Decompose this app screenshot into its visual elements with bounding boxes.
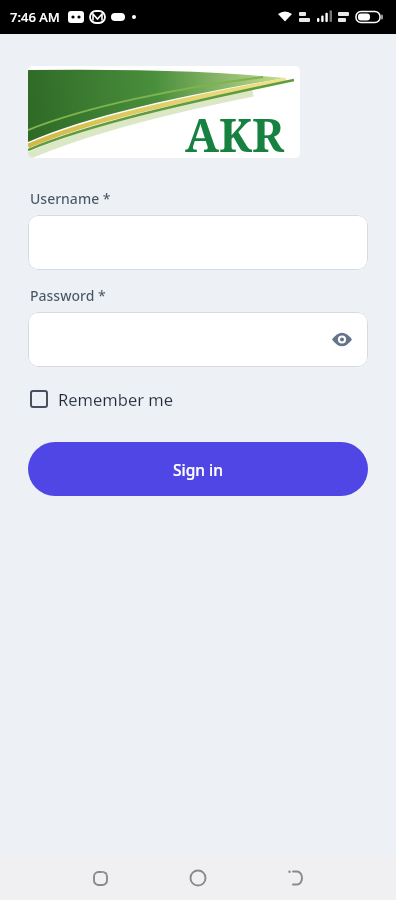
button[interactable] xyxy=(28,215,368,270)
button[interactable] xyxy=(78,856,122,900)
staticText: Sign in xyxy=(173,459,223,480)
staticText: Password * xyxy=(30,286,106,305)
staticText: 7:46 AM xyxy=(10,8,60,26)
staticText: Username * xyxy=(30,189,111,208)
button[interactable]: Remember me xyxy=(28,388,174,410)
staticText: Remember me xyxy=(58,388,174,410)
button[interactable] xyxy=(274,856,318,900)
button[interactable] xyxy=(28,312,368,367)
button[interactable]: Sign in xyxy=(28,442,368,496)
staticText: AKR xyxy=(185,104,284,158)
button[interactable] xyxy=(176,856,220,900)
